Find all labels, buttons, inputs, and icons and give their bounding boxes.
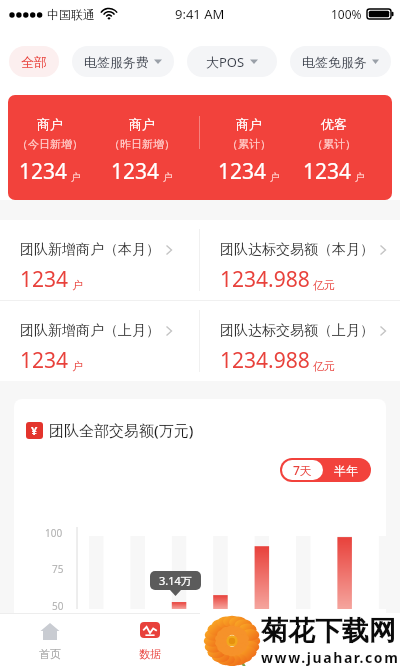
staticText: 户 — [72, 278, 83, 292]
staticText: 设置 — [339, 647, 361, 661]
staticText: 1234.988 — [220, 265, 310, 294]
staticText: 1234 — [218, 157, 267, 186]
button[interactable]: 数据 — [100, 613, 200, 666]
button[interactable]: 大POS — [187, 46, 277, 77]
staticText: 100 — [45, 526, 63, 540]
staticText: 中国联通 — [47, 7, 95, 22]
staticText: 电签免服务 — [302, 54, 367, 70]
button[interactable]: 7天 — [282, 460, 323, 480]
staticText: 团队达标交易额（上月） — [220, 322, 374, 340]
staticText: 团队新增商户（上月） — [20, 322, 160, 340]
staticText: （累计） — [312, 137, 356, 151]
staticText: 1234 — [19, 157, 68, 186]
staticText: （今日新增） — [17, 137, 83, 151]
staticText: 数据 — [139, 647, 161, 661]
button[interactable]: 团队达标交易额（上月） — [200, 301, 400, 375]
staticText: 商户 — [37, 116, 63, 132]
staticText: 团队新增商户（本月） — [20, 241, 160, 259]
staticText: 半年 — [334, 463, 358, 478]
staticText: 1234 — [20, 346, 69, 375]
button[interactable]: 全部 — [9, 46, 59, 77]
staticText: 首页 — [39, 647, 61, 661]
staticText: 100% — [331, 6, 362, 22]
staticText: 户 — [355, 171, 365, 184]
staticText: 团队达标交易额（本月） — [220, 241, 374, 259]
button[interactable]: 我的 — [200, 613, 300, 666]
staticText: 1234.988 — [220, 346, 310, 375]
button[interactable]: 首页 — [0, 613, 100, 666]
staticText: 电签服务费 — [84, 54, 149, 70]
staticText: 3.14万 — [159, 573, 192, 588]
button[interactable]: 团队新增商户（上月） — [0, 301, 199, 375]
staticText: 7天 — [293, 462, 312, 478]
staticText: 户 — [72, 359, 83, 373]
staticText: 9:41 AM — [175, 5, 225, 23]
staticText: 全部 — [21, 54, 47, 70]
button[interactable]: 设置 — [300, 613, 400, 666]
staticText: ¥ — [31, 423, 38, 438]
staticText: 我的 — [239, 647, 261, 661]
button[interactable]: 团队新增商户（本月） — [0, 220, 199, 294]
staticText: 菊花下载网 — [261, 614, 396, 648]
staticText: （累计） — [227, 137, 271, 151]
button[interactable]: 半年 — [323, 460, 369, 480]
button[interactable]: 电签服务费 — [72, 46, 174, 77]
staticText: 商户 — [236, 116, 262, 132]
staticText: 亿元 — [313, 278, 335, 292]
staticText: 1234 — [303, 157, 352, 186]
button[interactable]: 电签免服务 — [290, 46, 391, 77]
staticText: 优客 — [321, 116, 347, 132]
staticText: 亿元 — [313, 359, 335, 373]
staticText: 户 — [163, 171, 173, 184]
staticText: 大POS — [206, 53, 245, 71]
staticText: 1234 — [111, 157, 160, 186]
staticText: www.juahar.com — [261, 648, 400, 666]
staticText: 50 — [52, 599, 64, 613]
staticText: 户 — [270, 171, 280, 184]
staticText: 商户 — [129, 116, 155, 132]
staticText: 户 — [71, 171, 81, 184]
staticText: 75 — [52, 562, 64, 576]
staticText: 1234 — [20, 265, 69, 294]
staticText: 团队全部交易额(万元) — [49, 420, 194, 440]
button[interactable]: 团队达标交易额（本月） — [200, 220, 400, 294]
staticText: （昨日新增） — [109, 137, 175, 151]
